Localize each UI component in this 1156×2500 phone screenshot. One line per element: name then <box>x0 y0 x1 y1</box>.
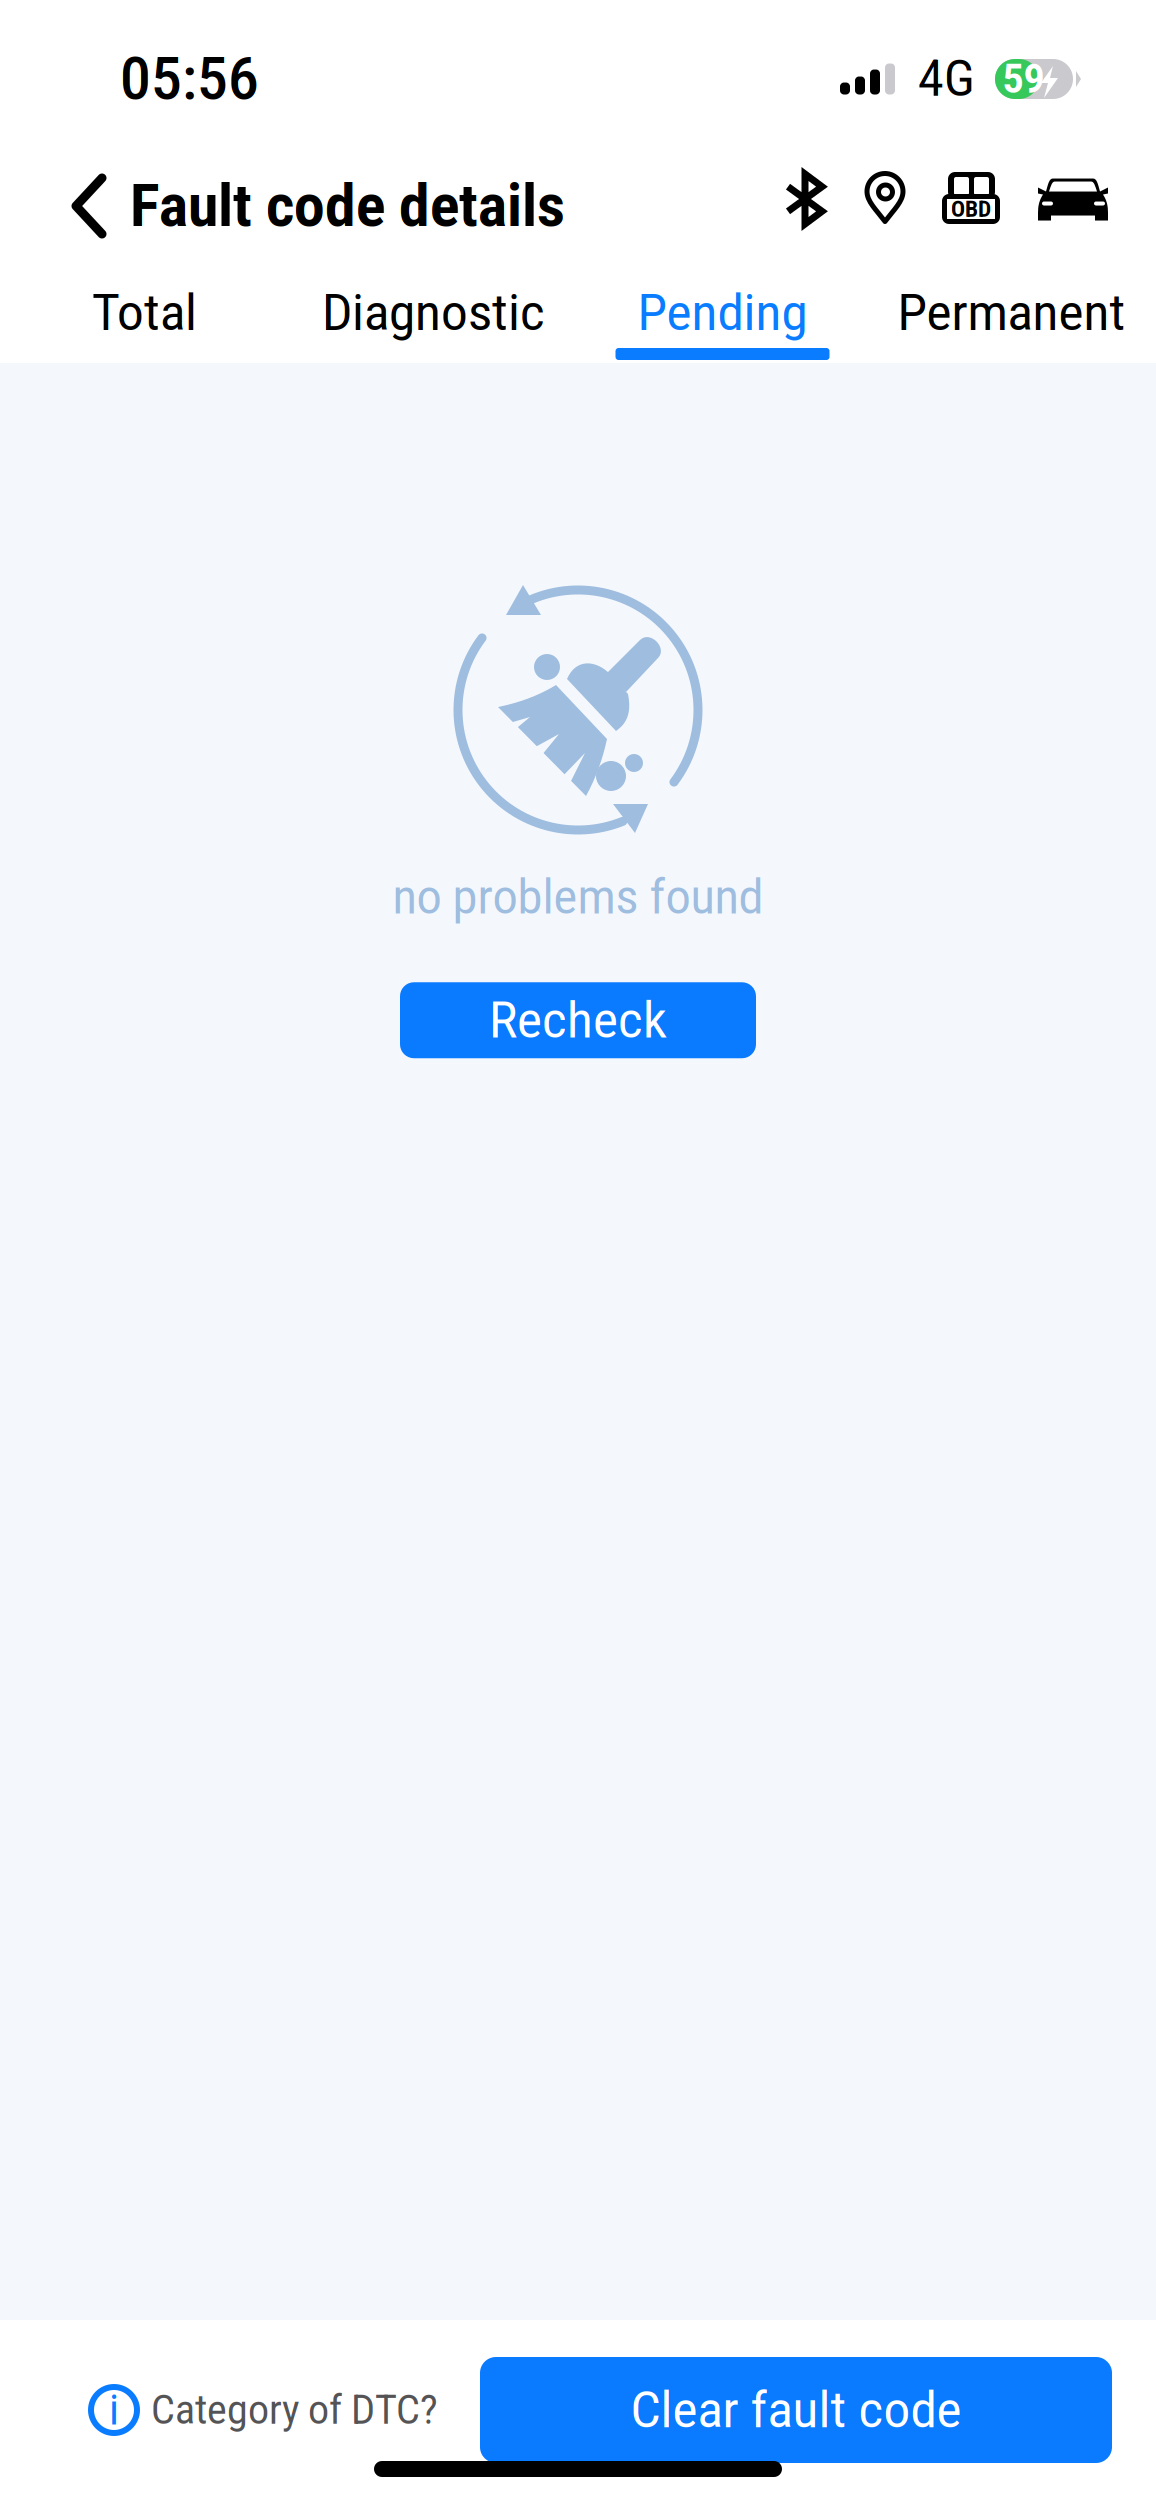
button[interactable]: Pending <box>578 276 867 363</box>
button[interactable]: Fault code details <box>0 154 577 258</box>
button[interactable]: Bluetooth <box>775 161 835 237</box>
staticText: 59 <box>1002 56 1044 102</box>
button[interactable]: Recheck <box>400 982 756 1058</box>
staticText: Total <box>92 283 197 342</box>
button[interactable]: Total <box>0 276 289 363</box>
button[interactable]: Vehicle <box>1030 168 1116 229</box>
staticText: Diagnostic <box>322 283 545 342</box>
staticText: Recheck <box>489 991 667 1050</box>
button[interactable]: OBD connection <box>934 153 1008 221</box>
staticText: no problems found <box>392 869 763 925</box>
staticText: Clear fault code <box>630 2380 961 2440</box>
staticText: OBD <box>951 196 991 222</box>
staticText: i <box>109 2385 119 2435</box>
staticText: Pending <box>637 283 807 342</box>
button[interactable]: Permanent <box>867 276 1156 363</box>
button[interactable]: i <box>0 2372 438 2448</box>
staticText: Permanent <box>897 283 1125 342</box>
staticText: Category of DTC? <box>151 2387 438 2433</box>
button[interactable]: Location <box>854 161 916 234</box>
button[interactable]: Clear fault code <box>480 2357 1112 2463</box>
button[interactable]: Diagnostic <box>289 276 578 363</box>
staticText: 05:56 <box>120 45 259 113</box>
staticText: Fault code details <box>130 172 565 240</box>
staticText: 4G <box>918 50 975 108</box>
